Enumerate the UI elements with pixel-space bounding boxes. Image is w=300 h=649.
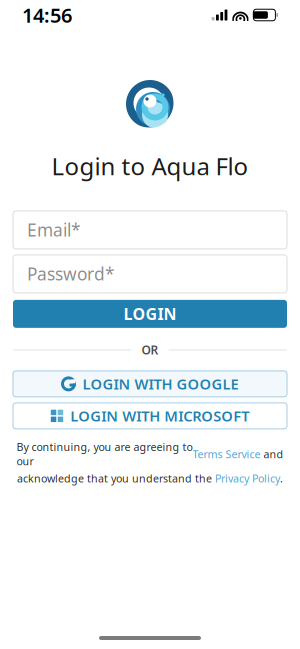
staticText: Login to Aqua Flo <box>51 150 248 182</box>
staticText: Terms Service <box>192 447 260 461</box>
button[interactable]: LOGIN WITH GOOGLE <box>13 371 287 397</box>
staticText: . <box>280 471 283 485</box>
staticText: Password* <box>27 262 115 285</box>
button[interactable]: LOGIN <box>13 300 287 328</box>
button[interactable]: Privacy Policy <box>215 471 280 485</box>
staticText: and <box>260 447 283 461</box>
staticText: LOGIN WITH MICROSOFT <box>70 406 249 426</box>
button[interactable]: Email* <box>13 211 287 249</box>
staticText: Privacy Policy <box>215 471 280 485</box>
button[interactable]: Terms Service <box>192 447 260 461</box>
staticText: 14:56 <box>22 2 72 28</box>
staticText: LOGIN WITH GOOGLE <box>82 374 238 394</box>
staticText: OR <box>141 342 158 358</box>
staticText: LOGIN <box>123 303 176 324</box>
button[interactable]: LOGIN WITH MICROSOFT <box>13 403 287 429</box>
staticText: Email* <box>27 218 81 241</box>
button[interactable]: Password* <box>13 255 287 293</box>
staticText: By continuing, you are agreeing to our <box>16 440 192 468</box>
staticText: acknowledge that you understand the <box>17 471 215 485</box>
